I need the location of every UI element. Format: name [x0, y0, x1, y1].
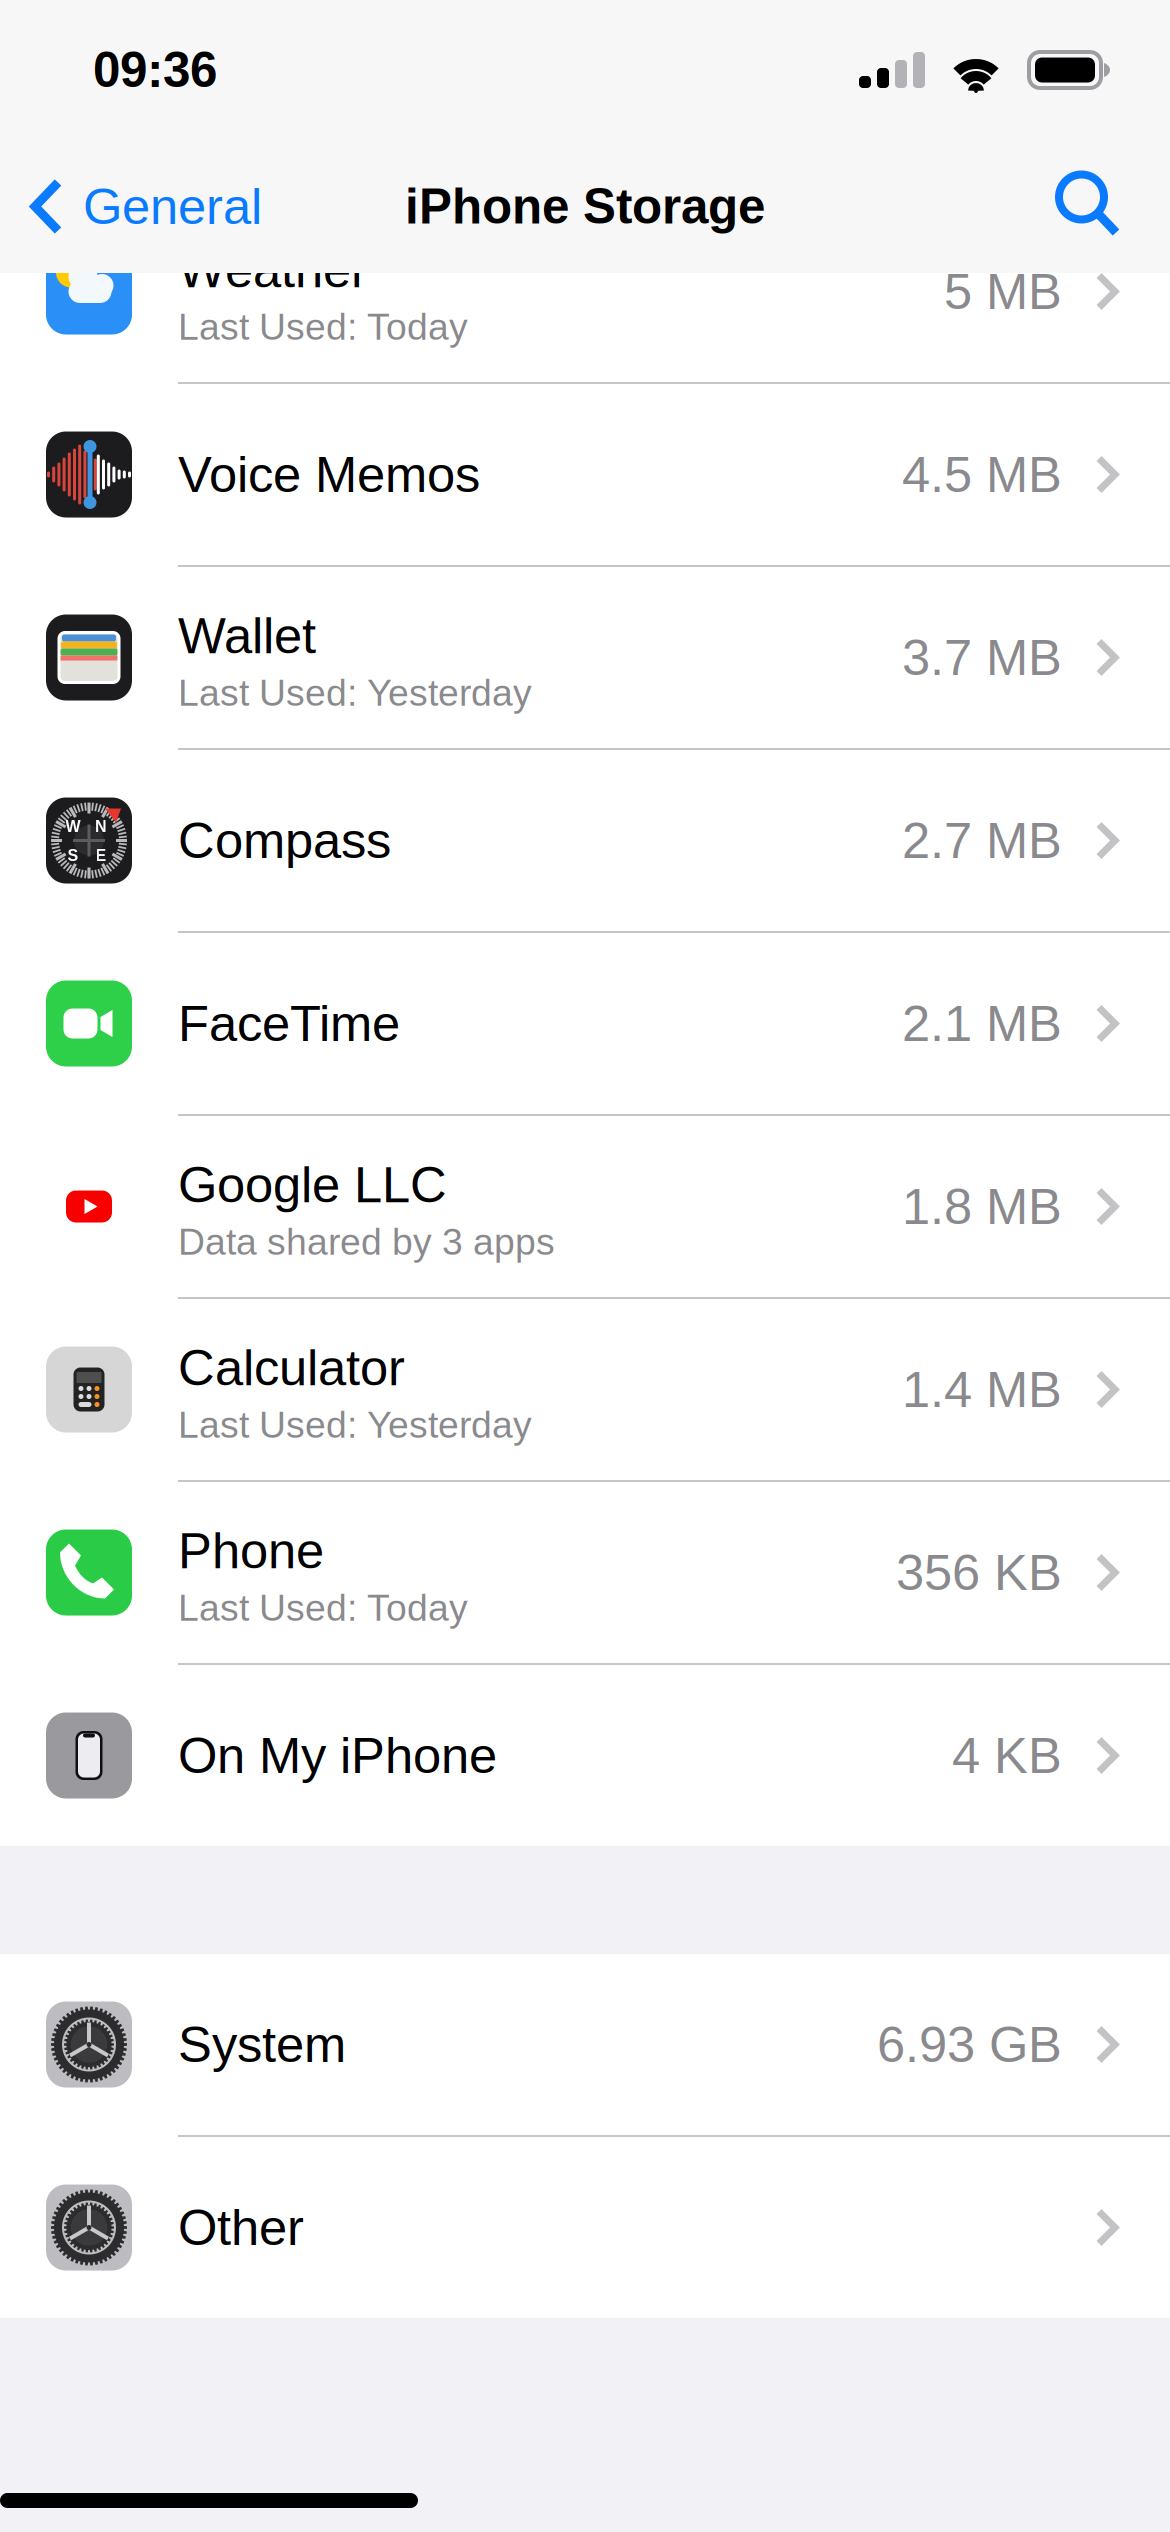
- staticText: 1.4 MB: [902, 1361, 1062, 1418]
- staticText: Last Used: Today: [178, 306, 468, 348]
- staticText: 356 KB: [896, 1544, 1062, 1601]
- button[interactable]: On My iPhone: [0, 1665, 1170, 1846]
- staticText: FaceTime: [178, 995, 400, 1052]
- staticText: 4.5 MB: [902, 446, 1062, 503]
- staticText: 09:36: [93, 42, 217, 97]
- staticText: Data shared by 3 apps: [178, 1221, 555, 1263]
- button[interactable]: W: [0, 750, 1170, 931]
- staticText: 4 KB: [952, 1727, 1062, 1784]
- staticText: Last Used: Today: [178, 1587, 468, 1629]
- staticText: General: [83, 178, 262, 235]
- staticText: Weather: [178, 241, 368, 298]
- staticText: E: [95, 847, 106, 864]
- staticText: On My iPhone: [178, 1727, 497, 1784]
- button[interactable]: General: [0, 140, 262, 273]
- button[interactable]: System: [0, 1954, 1170, 2135]
- button[interactable]: Wallet: [0, 567, 1170, 748]
- staticText: 2.7 MB: [902, 812, 1062, 869]
- staticText: S: [67, 847, 78, 864]
- button[interactable]: Weather: [0, 201, 1170, 382]
- button[interactable]: Google LLC: [0, 1116, 1170, 1297]
- button[interactable]: Calculator: [0, 1299, 1170, 1480]
- staticText: W: [65, 818, 80, 835]
- staticText: iPhone Storage: [405, 179, 765, 234]
- staticText: Compass: [178, 812, 391, 869]
- staticText: Last Used: Yesterday: [178, 672, 532, 714]
- staticText: Phone: [178, 1522, 324, 1579]
- staticText: 5 MB: [944, 263, 1062, 320]
- button[interactable]: Search: [1059, 140, 1170, 273]
- button[interactable]: Voice Memos: [0, 384, 1170, 565]
- staticText: Google LLC: [178, 1156, 447, 1213]
- staticText: 1.8 MB: [902, 1178, 1062, 1235]
- staticText: 6.93 GB: [877, 2016, 1062, 2073]
- button[interactable]: Other: [0, 2137, 1170, 2318]
- staticText: System: [178, 2016, 346, 2073]
- staticText: Last Used: Yesterday: [178, 1404, 532, 1446]
- staticText: Wallet: [178, 607, 316, 664]
- staticText: N: [95, 818, 107, 835]
- staticText: 2.1 MB: [902, 995, 1062, 1052]
- staticText: 3.7 MB: [902, 629, 1062, 686]
- staticText: Other: [178, 2199, 304, 2256]
- button[interactable]: Phone: [0, 1482, 1170, 1663]
- button[interactable]: FaceTime: [0, 933, 1170, 1114]
- staticText: Calculator: [178, 1339, 405, 1396]
- staticText: Voice Memos: [178, 446, 480, 503]
